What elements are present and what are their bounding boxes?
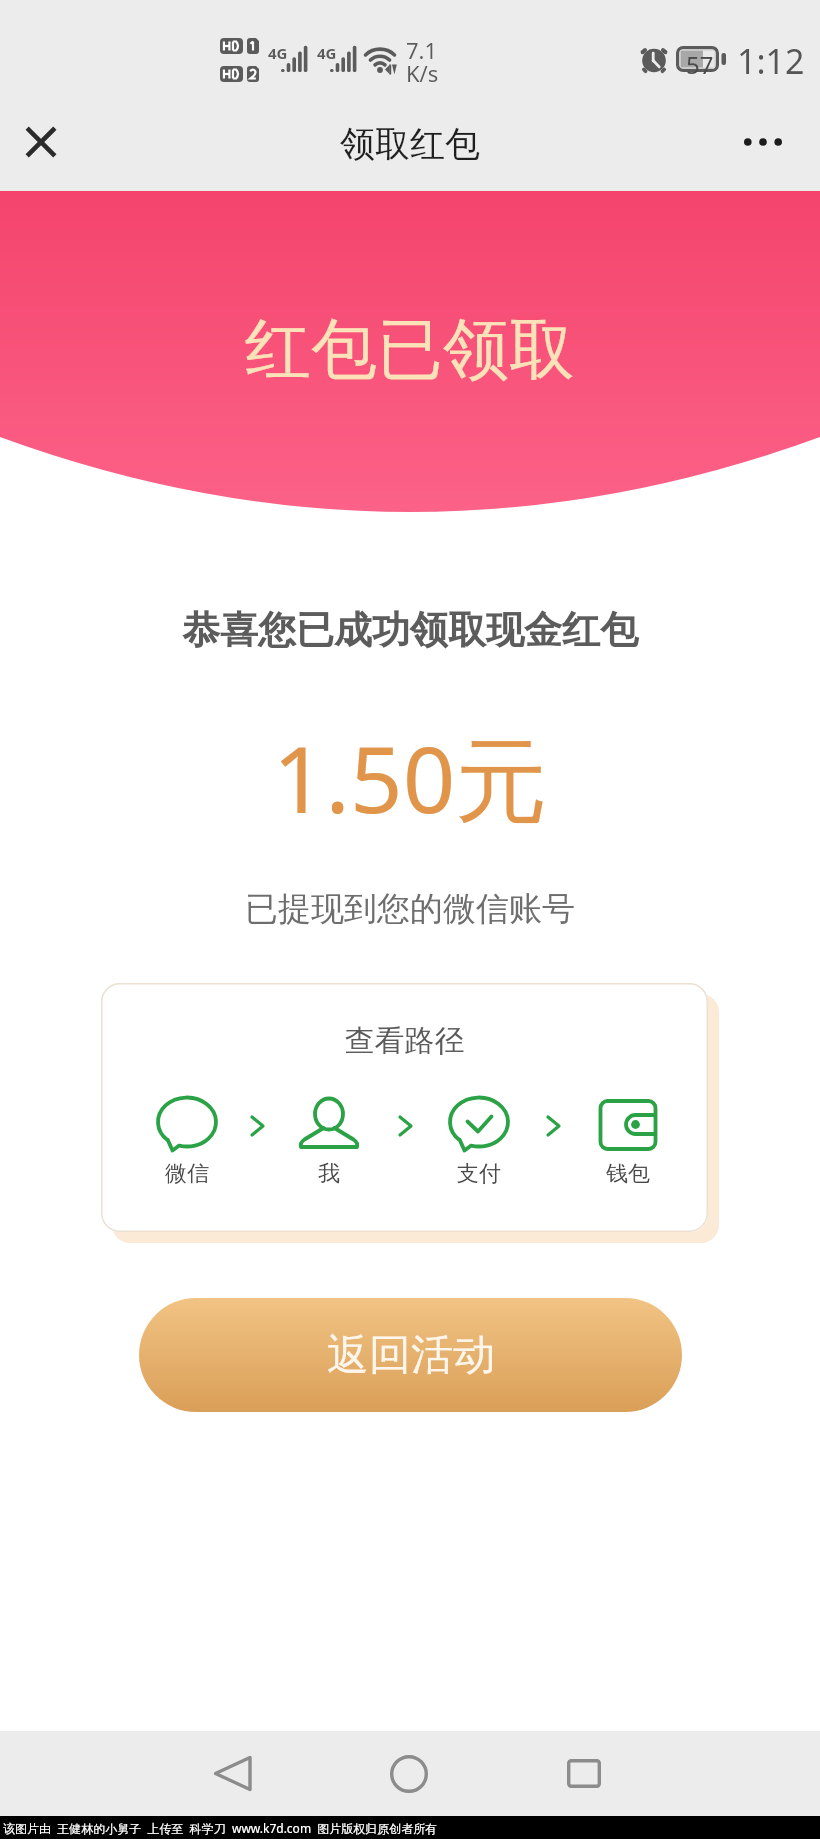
- button[interactable]: Back: [198, 1740, 268, 1807]
- staticText: 我: [318, 1160, 340, 1188]
- staticText: 1.50元: [0, 715, 820, 841]
- staticText: 7.1: [406, 35, 438, 65]
- staticText: 钱包: [606, 1160, 650, 1188]
- staticText: 4G: [268, 43, 288, 63]
- button[interactable]: 返回活动: [139, 1298, 682, 1412]
- button[interactable]: Close: [6, 107, 76, 177]
- staticText: 返回活动: [327, 1329, 495, 1382]
- staticText: 1:12: [737, 38, 805, 84]
- staticText: 恭喜您已成功领取现金红包: [0, 606, 820, 654]
- staticText: 4G: [317, 43, 337, 63]
- staticText: 微信: [165, 1160, 209, 1188]
- staticText: 查看路径: [101, 1022, 708, 1060]
- staticText: K/s: [406, 58, 439, 88]
- staticText: 红包已领取: [245, 308, 575, 391]
- staticText: 57: [686, 48, 714, 81]
- staticText: 支付: [457, 1160, 501, 1188]
- staticText: 领取红包: [0, 122, 820, 166]
- button[interactable]: More options: [728, 107, 798, 177]
- button[interactable]: Home: [374, 1740, 444, 1807]
- button[interactable]: Recents: [549, 1740, 619, 1807]
- staticText: 已提现到您的微信账号: [0, 888, 820, 930]
- staticText: 该图片由 王健林的小舅子 上传至 科学刀 www.k7d.com 图片版权归原创…: [3, 1820, 438, 1836]
